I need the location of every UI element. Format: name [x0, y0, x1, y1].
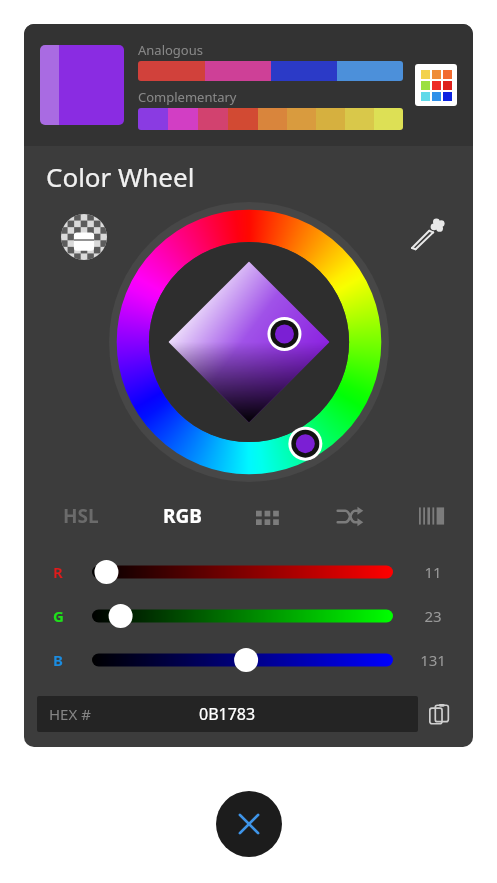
button[interactable]: R [24, 558, 473, 586]
button[interactable]: RGB [137, 490, 227, 542]
staticText: 131 [420, 650, 446, 670]
button[interactable]: Shades [391, 490, 473, 542]
staticText: HEX # [49, 704, 91, 724]
staticText: Analogous [138, 41, 203, 59]
button[interactable]: Copy hex [418, 696, 460, 732]
staticText: B [53, 650, 63, 670]
staticText: HSL [63, 503, 99, 529]
button[interactable]: G [24, 602, 473, 630]
button[interactable]: Palette [138, 61, 403, 81]
staticText: Complementary [138, 88, 237, 106]
button[interactable]: Close [216, 791, 282, 857]
staticText: Color Wheel [46, 159, 195, 194]
button[interactable]: HSL [24, 490, 137, 542]
staticText: RGB [163, 503, 202, 529]
button[interactable]: Grid view [227, 490, 309, 542]
staticText: 11 [424, 562, 442, 582]
staticText: 0B1783 [199, 703, 256, 725]
staticText: 23 [424, 606, 442, 626]
button[interactable]: HEX # [37, 696, 418, 732]
button[interactable]: Transparency [61, 214, 107, 260]
staticText: R [53, 562, 63, 582]
button[interactable]: Palette [138, 108, 403, 130]
button[interactable]: Color wheel [109, 202, 389, 482]
button[interactable]: Current color [40, 45, 124, 125]
staticText: G [53, 606, 64, 626]
button[interactable]: Shuffle [309, 490, 391, 542]
button[interactable]: Palettes [415, 64, 457, 106]
button[interactable]: Eyedropper [406, 214, 446, 254]
button[interactable]: B [24, 646, 473, 674]
